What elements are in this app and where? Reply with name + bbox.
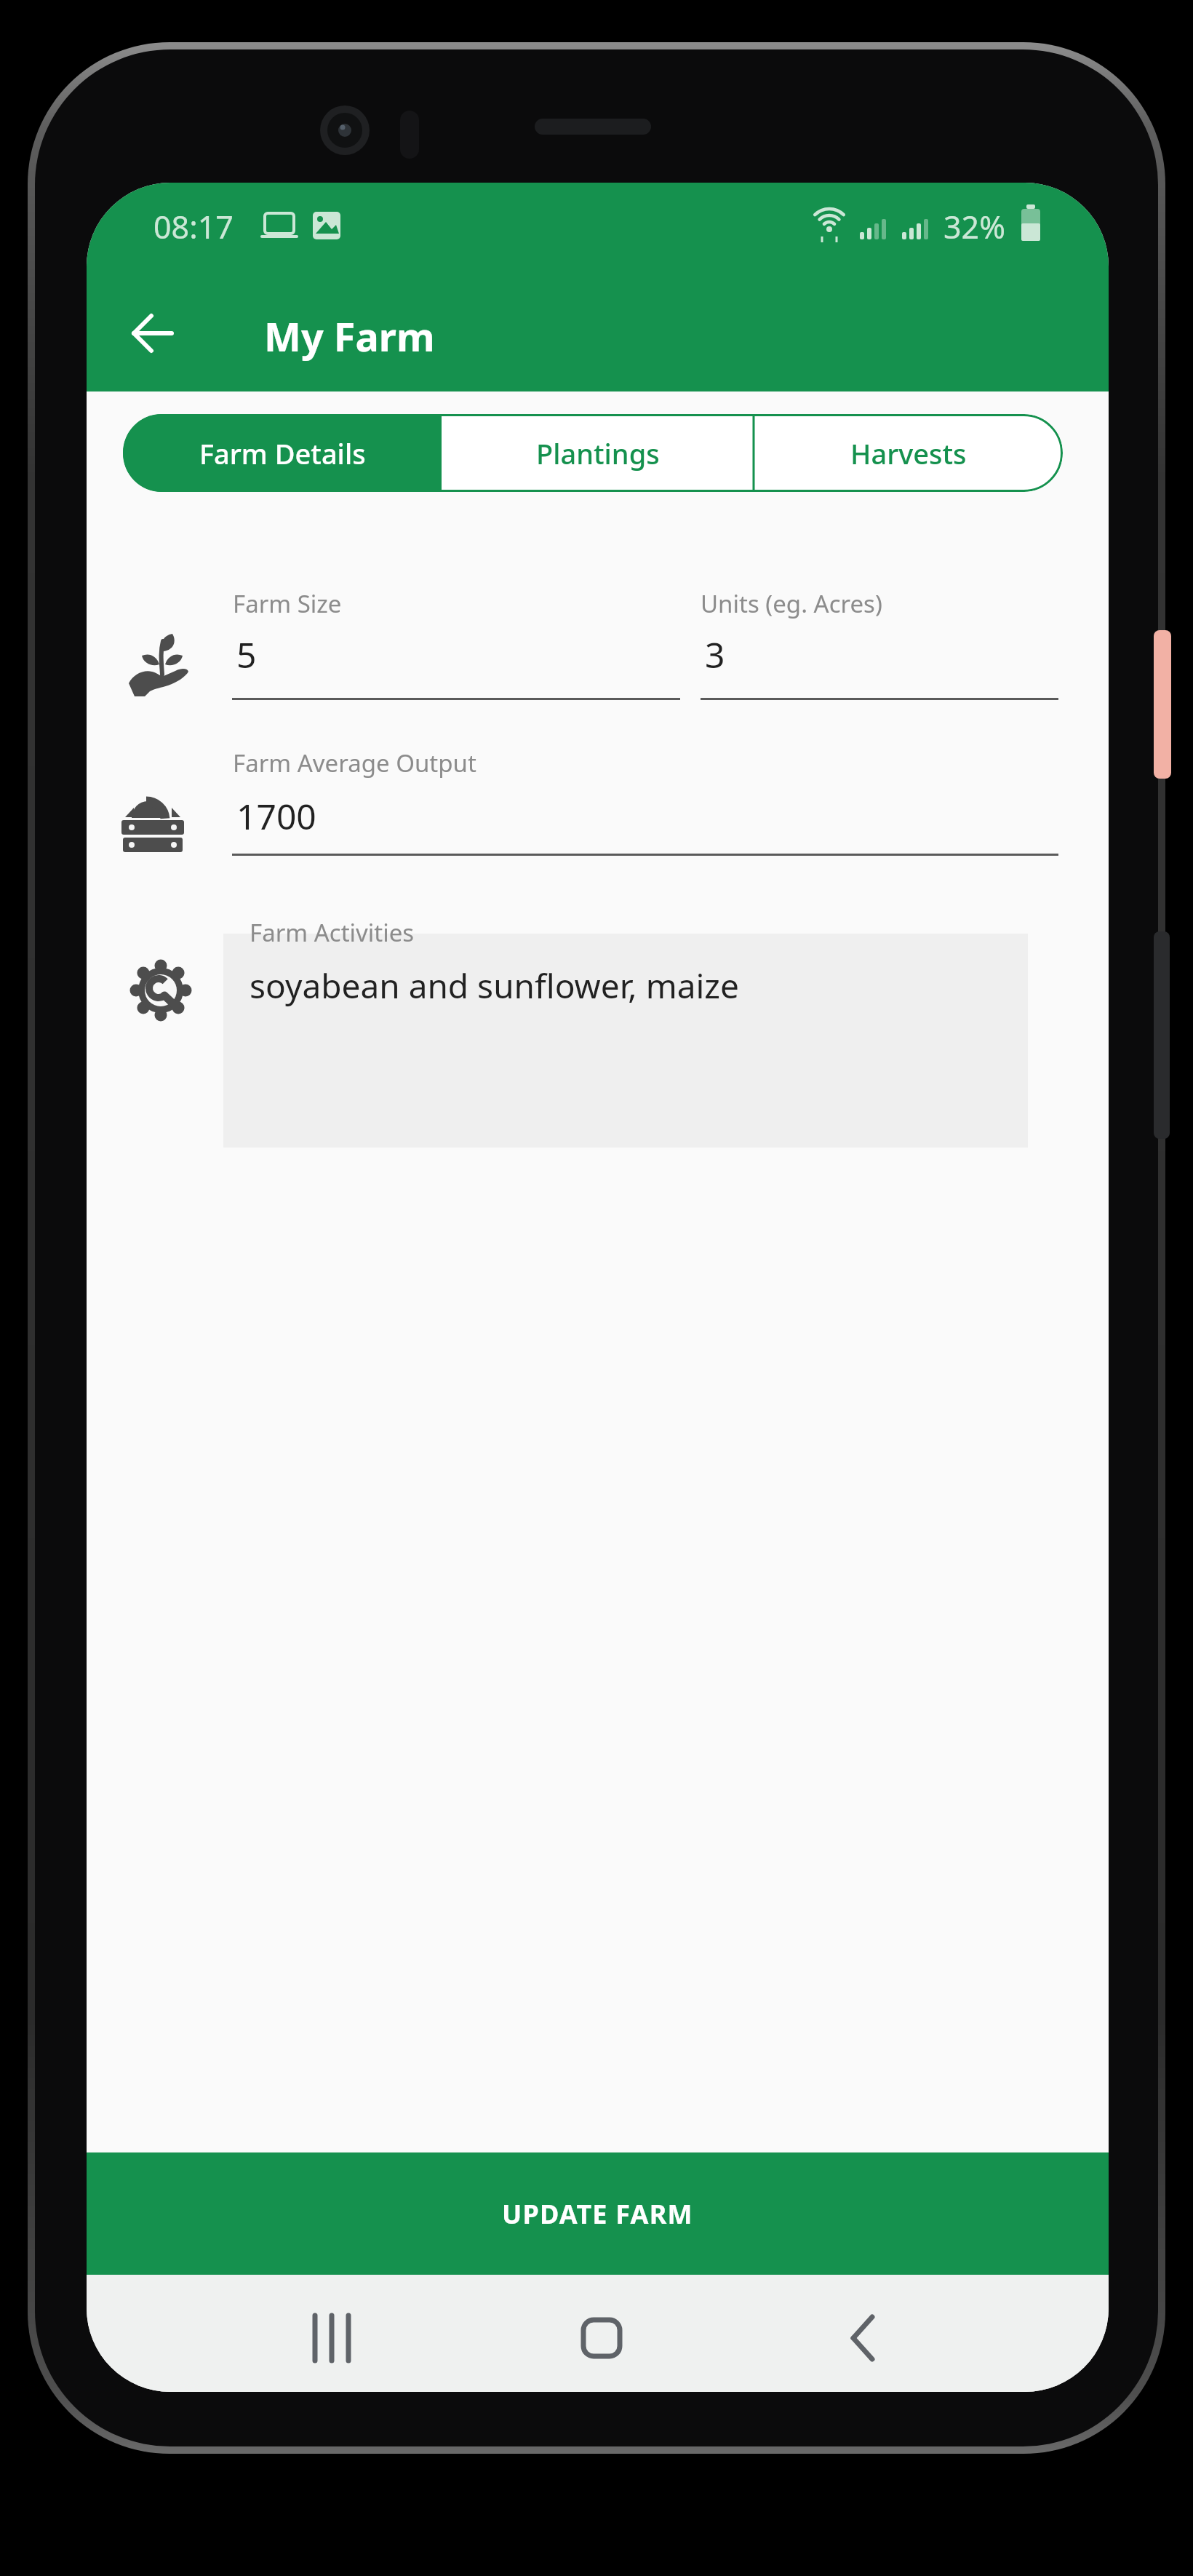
staticText: soyabean and sunflower, maize (250, 963, 739, 1009)
staticText: Farm Details (199, 434, 366, 472)
staticText: Harvests (850, 434, 967, 472)
staticText: 5 (236, 631, 257, 678)
staticText: UPDATE FARM (502, 2196, 693, 2232)
staticText: 1700 (236, 792, 316, 840)
staticText: 32% (943, 205, 1005, 248)
staticText: 08:17 (153, 205, 234, 248)
staticText: Units (eg. Acres) (701, 587, 882, 620)
staticText: Farm Size (233, 587, 342, 620)
staticText: Plantings (536, 434, 660, 472)
staticText: My Farm (264, 309, 435, 363)
staticText: Farm Average Output (233, 747, 476, 779)
staticText: Farm Activities (250, 916, 415, 949)
staticText: 3 (705, 631, 725, 678)
